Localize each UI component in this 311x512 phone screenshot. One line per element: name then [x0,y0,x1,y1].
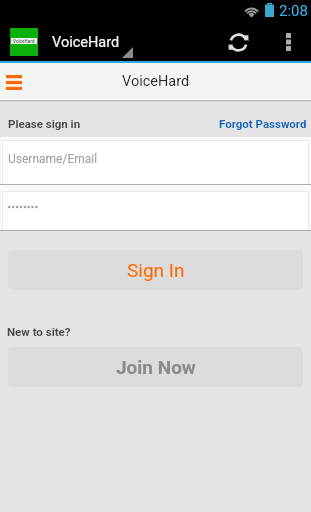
staticText: VoiceHard [52,34,120,51]
staticText: Username/Email [8,152,98,166]
button[interactable]: Menu [0,63,29,99]
staticText: Join Now [116,356,196,378]
staticText: Sign In [127,259,185,281]
button[interactable]: Join Now [8,347,303,387]
staticText: Please sign in [8,117,81,130]
button[interactable]: Sign In [8,250,303,290]
button[interactable]: Username/Email [0,137,311,185]
staticText: VoiceHard [122,73,190,90]
staticText: New to site? [7,325,71,338]
staticText: VoiceHard [13,39,35,44]
button[interactable]: VoiceHard [0,28,125,56]
button[interactable]: Forgot Password [219,117,311,130]
staticText: 2:08 [279,2,308,20]
button[interactable]: Refresh [227,22,249,62]
button[interactable] [0,188,311,231]
button[interactable]: More options [277,21,299,63]
